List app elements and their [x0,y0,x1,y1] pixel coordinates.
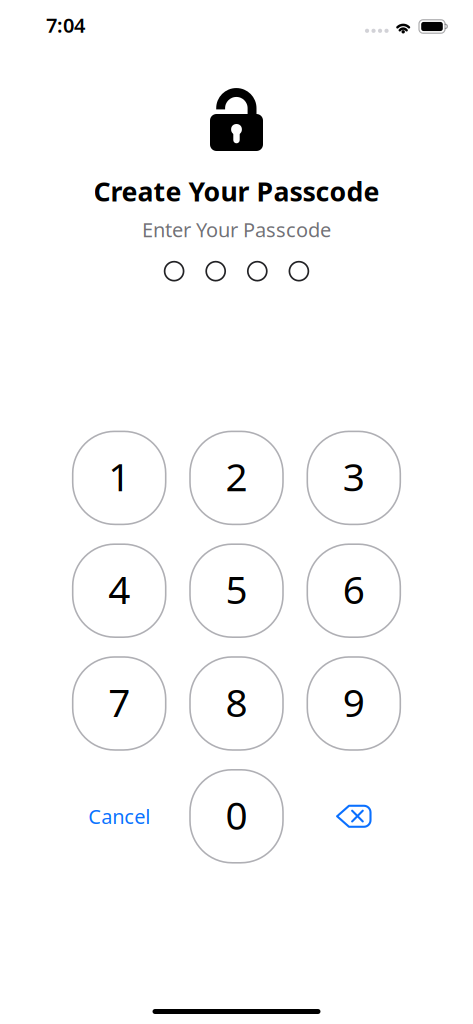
staticText: Enter Your Passcode [142,216,331,243]
button[interactable]: 9 [307,657,400,750]
button[interactable]: 3 [307,431,400,524]
button[interactable]: 8 [190,657,283,750]
staticText: 2 [225,451,247,502]
button[interactable]: Cancel [73,770,166,863]
staticText: 7 [108,676,130,727]
button[interactable]: Delete [307,770,400,863]
staticText: 1 [108,451,130,502]
button[interactable]: 2 [190,431,283,524]
button[interactable]: 4 [73,544,166,637]
staticText: 3 [343,451,365,502]
staticText: 4 [108,563,130,615]
button[interactable]: 6 [307,544,400,637]
button[interactable]: 1 [73,431,166,524]
button[interactable]: 7 [73,657,166,750]
staticText: 6 [343,563,365,615]
staticText: 9 [343,676,365,727]
staticText: 0 [225,789,247,840]
staticText: 5 [225,563,247,615]
staticText: 7:04 [46,12,85,38]
staticText: Create Your Passcode [93,173,379,209]
button[interactable]: 0 [190,770,283,863]
button[interactable]: 5 [190,544,283,637]
staticText: Cancel [88,803,150,830]
staticText: 8 [225,676,247,727]
